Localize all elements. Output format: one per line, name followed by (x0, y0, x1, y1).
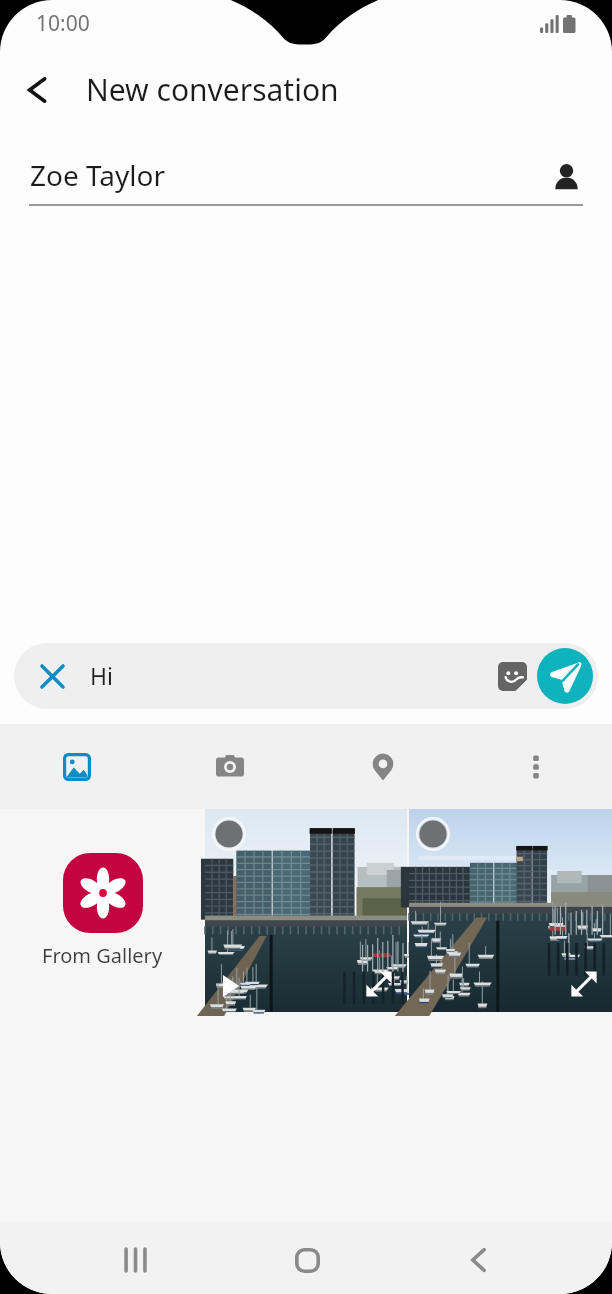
button[interactable]: Gallery (0, 724, 153, 809)
button[interactable]: Home (264, 1224, 350, 1294)
button[interactable]: Back (435, 1224, 521, 1294)
staticText: Hi (90, 660, 113, 691)
button[interactable]: Location (306, 724, 459, 809)
button[interactable]: Camera (153, 724, 306, 809)
button[interactable]: Photo (409, 809, 612, 1012)
button[interactable]: From Gallery (0, 809, 205, 1012)
button[interactable]: Navigate up (0, 56, 76, 124)
button[interactable]: Choose contact (543, 154, 589, 200)
button[interactable]: Zoe Taylor (30, 145, 166, 183)
staticText: 10:00 (36, 9, 90, 38)
staticText: From Gallery (42, 942, 163, 969)
button[interactable]: Clear text (14, 643, 90, 709)
button[interactable]: Select (212, 817, 246, 851)
button[interactable]: Select (416, 817, 450, 851)
button[interactable]: Photo (205, 809, 407, 1012)
button[interactable]: More options (459, 724, 612, 809)
button[interactable]: Stickers (483, 643, 541, 709)
staticText: New conversation (86, 69, 339, 110)
button[interactable]: Recent apps (92, 1224, 178, 1294)
button[interactable]: Send message (537, 648, 593, 704)
